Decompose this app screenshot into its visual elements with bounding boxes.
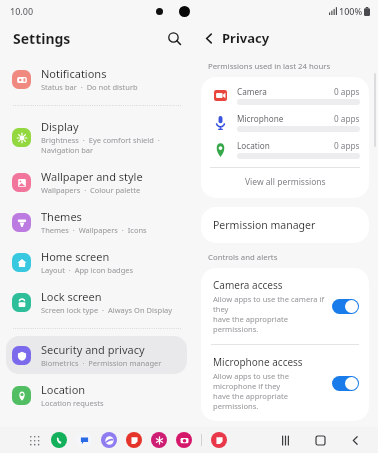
button[interactable]: Internet — [101, 432, 117, 448]
staticText: Settings — [13, 29, 71, 48]
staticText: Themes · Wallpapers · Icons — [41, 225, 147, 235]
staticText: Microphone — [237, 113, 334, 124]
staticText: Wallpapers · Colour palette — [41, 185, 141, 195]
staticText: Biometrics · Permission manager — [41, 358, 162, 368]
button[interactable]: Back — [196, 25, 222, 51]
staticText: 0 apps — [334, 86, 360, 97]
button[interactable]: Recent apps — [277, 432, 294, 449]
staticText: Security and privacy — [41, 342, 145, 357]
button[interactable]: Wallpaper and style — [6, 163, 187, 201]
staticText: 0 apps — [334, 113, 360, 124]
staticText: Controls and alerts — [208, 252, 278, 263]
staticText: Location — [237, 140, 334, 151]
button[interactable]: Phone — [51, 432, 67, 448]
button[interactable]: Apps — [26, 432, 42, 448]
button[interactable]: Home — [312, 432, 329, 449]
button[interactable]: Search — [160, 24, 188, 52]
staticText: Status bar · Do not disturb — [41, 82, 138, 92]
button[interactable]: View all permissions — [201, 168, 369, 196]
button[interactable]: Microphone access — [201, 345, 369, 421]
button[interactable]: Themes — [6, 203, 187, 241]
staticText: Display — [41, 119, 79, 134]
staticText: 10.00 — [10, 5, 34, 17]
button[interactable]: Location — [201, 140, 369, 159]
button[interactable]: Permission manager — [201, 207, 369, 243]
staticText: 100% — [339, 5, 363, 17]
button[interactable]: Security and privacy — [6, 336, 187, 374]
button[interactable]: Camera — [176, 432, 192, 448]
staticText: Allow apps to use the microphone if they… — [213, 371, 326, 411]
button[interactable]: Samsung Notes — [211, 432, 227, 448]
button[interactable]: Notifications — [6, 60, 187, 98]
button[interactable]: On — [332, 299, 359, 314]
staticText: View all permissions — [245, 176, 326, 188]
staticText: Allow apps to use the camera if they hav… — [213, 294, 326, 334]
staticText: Brightness · Eye comfort shield · — [41, 135, 160, 145]
staticText: Location requests — [41, 398, 104, 408]
staticText: Lock screen — [41, 289, 102, 304]
button[interactable]: Back — [347, 432, 364, 449]
staticText: Home screen — [41, 249, 110, 264]
staticText: Permission manager — [213, 218, 316, 232]
staticText: 0 apps — [334, 140, 360, 151]
staticText: Navigation bar — [41, 145, 94, 155]
staticText: Screen lock type · Always On Display — [41, 305, 173, 315]
staticText: Notifications — [41, 66, 107, 81]
staticText: Layout · App icon badges — [41, 265, 134, 275]
staticText: Camera access — [213, 278, 283, 292]
button[interactable]: On — [332, 376, 359, 391]
staticText: Themes — [41, 209, 82, 224]
button[interactable]: Camera — [201, 86, 369, 105]
button[interactable]: Notes — [126, 432, 142, 448]
staticText: Permissions used in last 24 hours — [208, 61, 331, 72]
button[interactable]: Microphone — [201, 113, 369, 132]
button[interactable]: Lock screen — [6, 283, 187, 321]
button[interactable]: Location — [6, 376, 187, 414]
staticText: Microphone access — [213, 355, 303, 369]
button[interactable]: Display — [6, 113, 187, 161]
button[interactable]: Messages — [76, 432, 92, 448]
staticText: Wallpaper and style — [41, 169, 143, 184]
staticText: Location — [41, 382, 86, 397]
button[interactable]: Camera access — [201, 268, 369, 344]
staticText: Privacy — [222, 29, 270, 47]
button[interactable]: Gallery — [151, 432, 167, 448]
staticText: Camera — [237, 86, 334, 97]
button[interactable]: Home screen — [6, 243, 187, 281]
